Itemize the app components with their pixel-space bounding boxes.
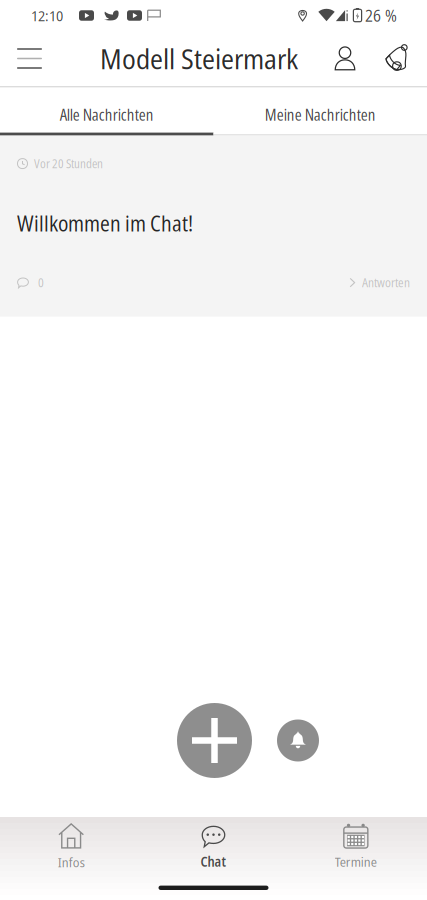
staticText: 26 % [365,5,397,26]
staticText: Antworten [362,274,410,291]
staticText: Modell Steiermark [100,39,298,77]
staticText: Meine Nachrichten [265,104,376,125]
button[interactable]: Chat [142,818,285,874]
staticText: Chat [200,852,226,871]
button[interactable]: Benachrichtigung [277,719,319,761]
button[interactable]: Meine Nachrichten [213,88,427,133]
staticText: Alle Nachrichten [60,104,154,125]
staticText: 12:10 [31,5,63,25]
button[interactable]: Infos [0,818,142,874]
button[interactable]: Termine [285,818,427,874]
button[interactable]: Benachrichtigungen [374,30,419,86]
staticText: Willkommen im Chat! [17,209,193,238]
button[interactable]: Alle Nachrichten [0,88,213,133]
staticText: Vor 20 Stunden [34,155,103,172]
staticText: 0 [38,274,44,291]
staticText: Termine [335,852,377,871]
button[interactable]: Profil [316,30,374,86]
button[interactable]: Neue Nachricht [177,703,252,778]
staticText: Infos [58,853,85,871]
button[interactable]: Menü [0,30,59,86]
button[interactable]: Vor 20 Stunden [0,136,427,317]
